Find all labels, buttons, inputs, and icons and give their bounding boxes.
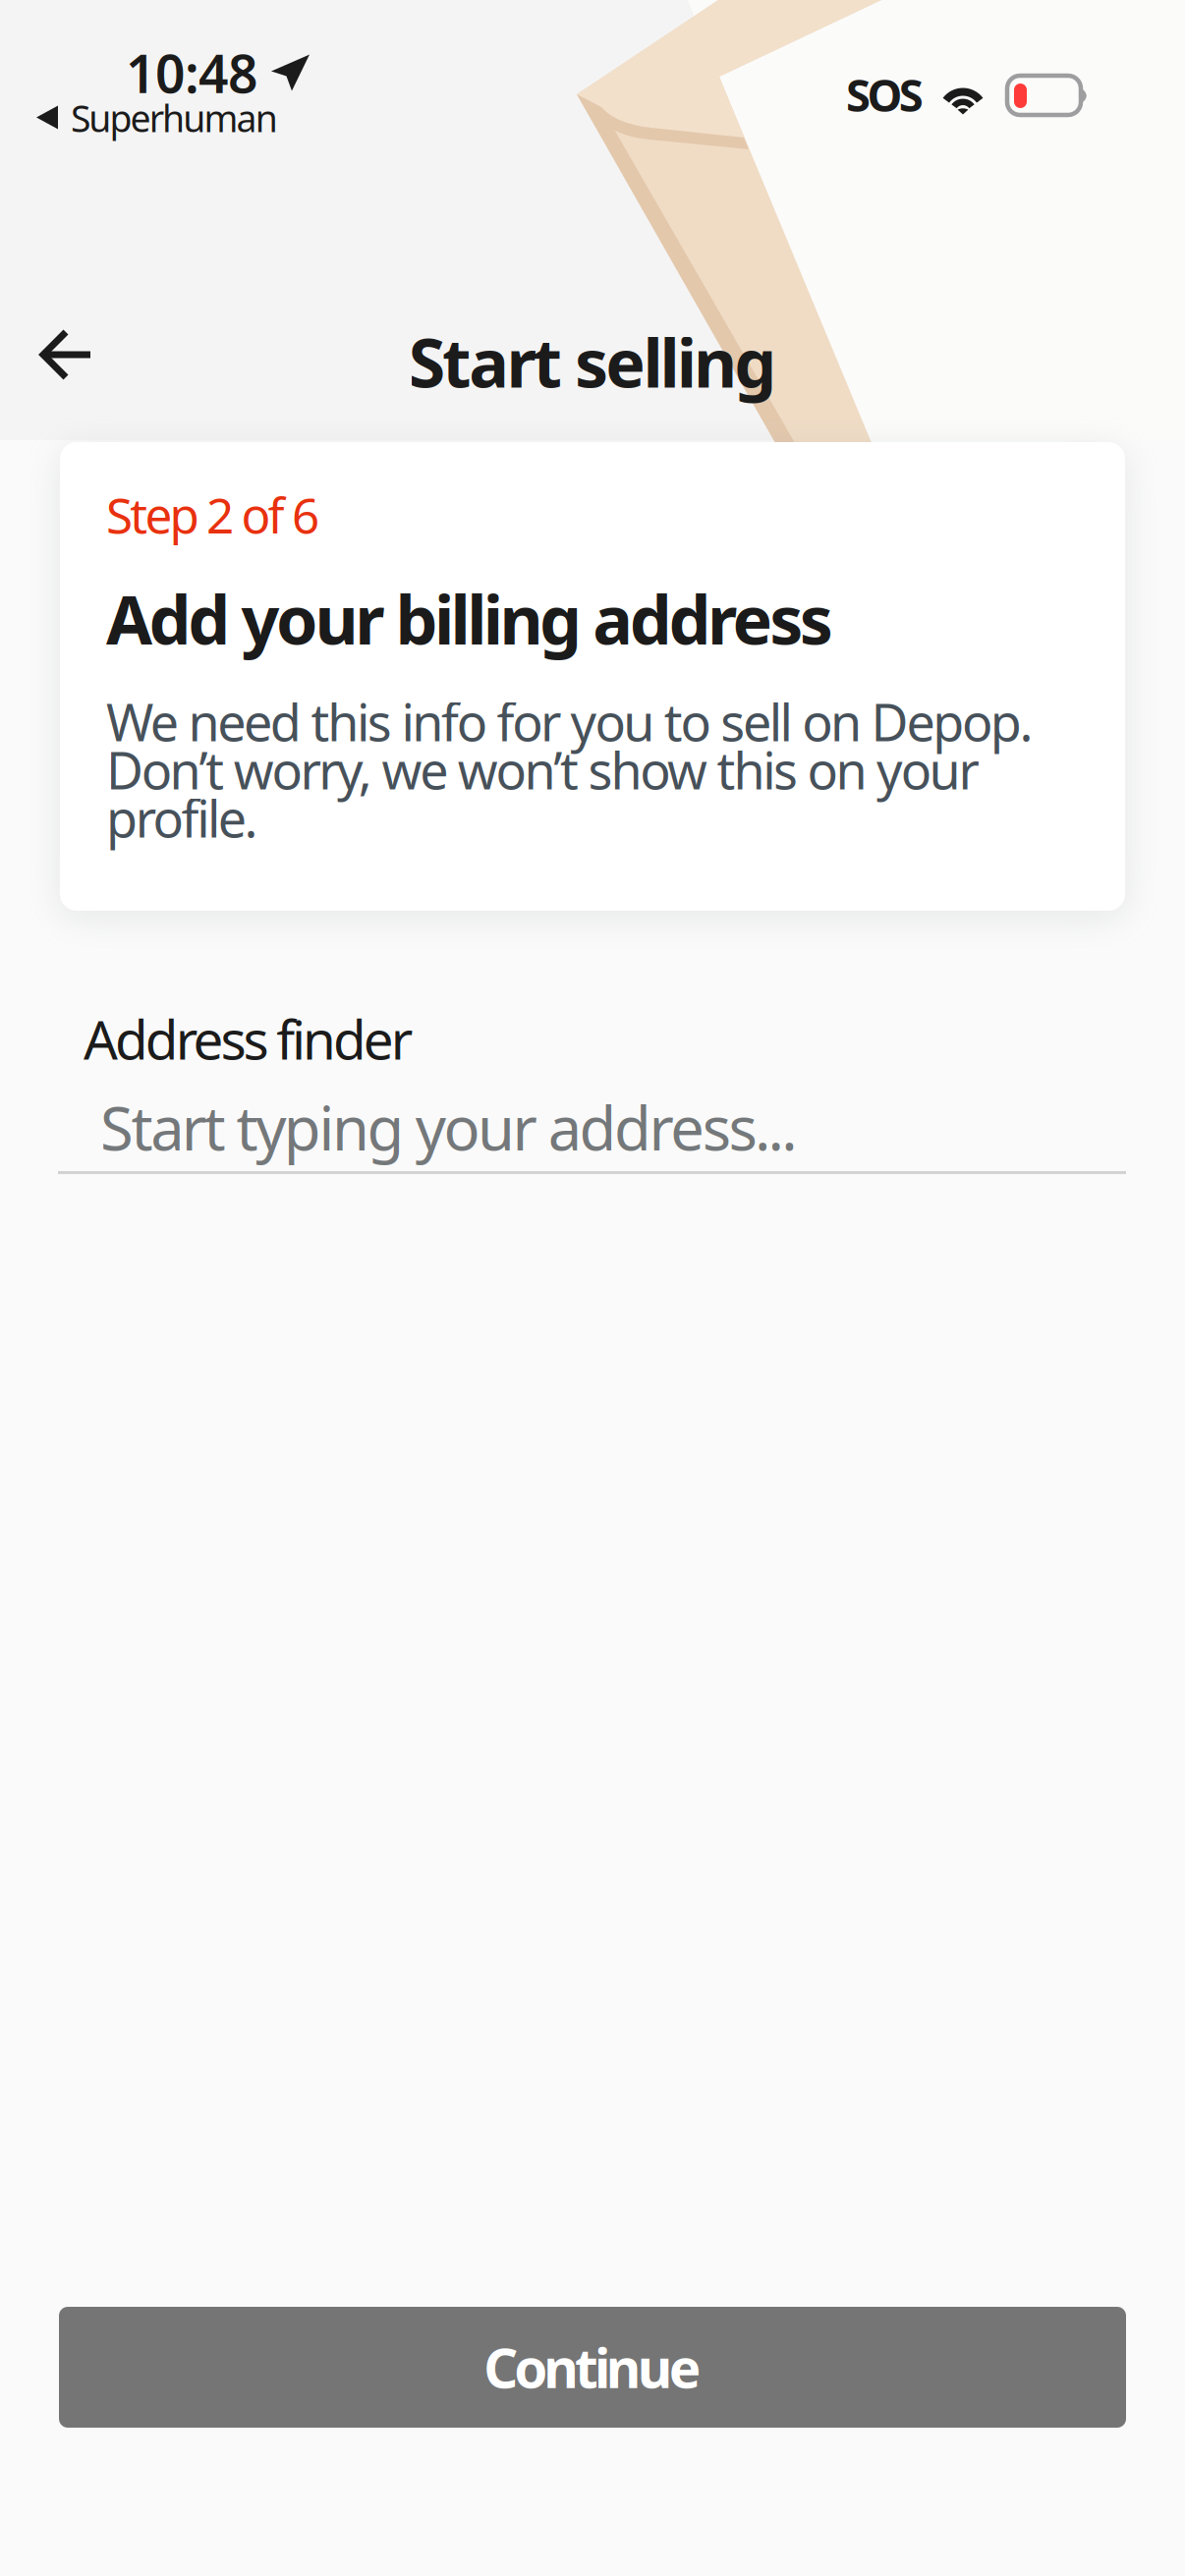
staticText: Start selling <box>409 317 776 406</box>
staticText: Start typing your address... <box>100 1087 797 1167</box>
staticText: Add your billing address <box>106 574 833 663</box>
staticText: 10:48 <box>126 38 258 107</box>
staticText: Address finder <box>84 1003 413 1074</box>
staticText: SOS <box>846 65 923 124</box>
button[interactable]: Back <box>12 301 122 409</box>
staticText: We need this info for you to sell on Dep… <box>106 688 1033 852</box>
button[interactable]: Continue <box>59 2307 1126 2428</box>
button[interactable]: Superhuman <box>36 98 278 138</box>
staticText: Step 2 of 6 <box>106 482 319 547</box>
staticText: Superhuman <box>71 94 278 142</box>
staticText: Continue <box>484 2332 701 2403</box>
